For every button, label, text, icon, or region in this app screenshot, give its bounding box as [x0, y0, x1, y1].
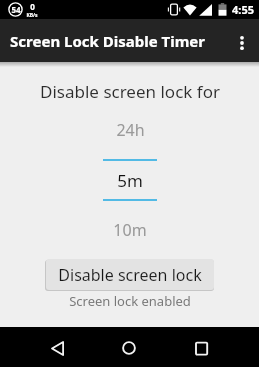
staticText: 24h	[116, 119, 145, 141]
staticText: Disable screen lock for	[40, 80, 220, 103]
button[interactable]	[225, 19, 259, 62]
staticText: 5m	[117, 169, 143, 192]
button[interactable]	[109, 328, 149, 367]
button[interactable]: 24h	[85, 115, 175, 145]
button[interactable]	[181, 328, 221, 367]
staticText: 54	[11, 4, 21, 15]
button[interactable]: 10m	[85, 215, 175, 245]
staticText: KB/s	[26, 12, 38, 19]
staticText: Screen Lock Disable Timer	[10, 31, 205, 51]
staticText: Disable screen lock	[58, 264, 202, 286]
staticText: 10m	[113, 219, 147, 241]
staticText: 0	[30, 1, 35, 12]
button[interactable]	[37, 328, 77, 367]
staticText: Screen lock enabled	[69, 292, 191, 310]
staticText: 4:55	[232, 2, 254, 17]
button[interactable]: 5m	[85, 165, 175, 195]
button[interactable]: Disable screen lock	[46, 259, 214, 290]
